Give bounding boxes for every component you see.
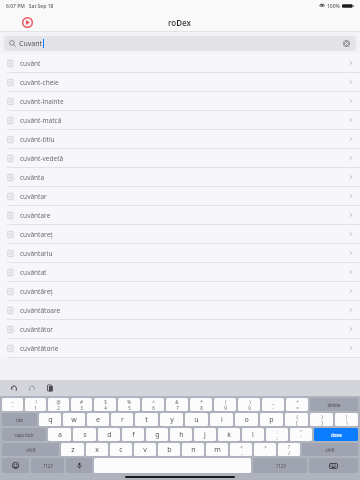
staticText: f <box>132 430 135 440</box>
button[interactable]: cuvântătoare <box>0 301 360 320</box>
button[interactable]: & <box>166 398 188 411</box>
button[interactable]: e <box>87 413 109 426</box>
button[interactable]: .?123 <box>253 458 307 473</box>
button[interactable]: Undo <box>8 382 20 394</box>
button[interactable]: v <box>134 443 156 456</box>
button[interactable]: cuvântariu <box>0 244 360 263</box>
button[interactable]: Cuvant <box>4 36 356 51</box>
button[interactable]: s <box>73 428 96 441</box>
button[interactable]: cuvântăreț <box>0 282 360 301</box>
staticText: o <box>244 415 249 425</box>
button[interactable]: * <box>190 398 212 411</box>
button[interactable]: n <box>182 443 204 456</box>
button[interactable]: shift <box>302 443 358 456</box>
button[interactable]: p <box>260 413 283 426</box>
button[interactable]: cuvânt-vedetă <box>0 149 360 168</box>
staticText: / <box>288 450 290 456</box>
staticText: cuvântareț <box>20 230 53 239</box>
button[interactable]: ~ <box>2 398 23 411</box>
button[interactable]: cuvânt-înainte <box>0 92 360 111</box>
button[interactable]: u <box>185 413 208 426</box>
button[interactable]: cuvânt <box>0 54 360 73</box>
button[interactable]: ( <box>214 398 236 411</box>
button[interactable]: : <box>266 428 288 441</box>
button[interactable]: c <box>110 443 132 456</box>
button[interactable]: Clear text <box>342 39 351 48</box>
button[interactable]: " <box>290 428 312 441</box>
button[interactable]: cuvânt-cheie <box>0 73 360 92</box>
staticText: % <box>127 399 131 405</box>
button[interactable]: @ <box>48 398 69 411</box>
button[interactable]: cuvântătorie <box>0 339 360 358</box>
button[interactable]: { <box>285 413 308 426</box>
button[interactable]: m <box>206 443 228 456</box>
button[interactable]: % <box>118 398 140 411</box>
staticText: m <box>214 445 221 455</box>
button[interactable]: .?123 <box>31 458 64 473</box>
button[interactable]: x <box>86 443 108 456</box>
button[interactable]: Redo <box>26 382 38 394</box>
button[interactable]: done <box>314 428 358 441</box>
staticText: g <box>155 430 160 440</box>
staticText: l <box>252 430 254 440</box>
staticText: k <box>227 430 231 440</box>
staticText: @ <box>56 399 61 405</box>
staticText: w <box>71 415 77 425</box>
staticText: cuvântare <box>20 211 51 220</box>
button[interactable]: b <box>158 443 180 456</box>
button[interactable]: cuvânt-matcă <box>0 111 360 130</box>
button[interactable]: ? <box>278 443 300 456</box>
button[interactable]: # <box>71 398 92 411</box>
button[interactable]: z <box>61 443 84 456</box>
button[interactable]: w <box>63 413 85 426</box>
staticText: cuvântător <box>20 325 54 334</box>
button[interactable]: Menu <box>20 15 34 29</box>
button[interactable]: ) <box>238 398 260 411</box>
button[interactable]: q <box>39 413 61 426</box>
button[interactable]: cuvântar <box>0 187 360 206</box>
button[interactable]: > <box>254 443 276 456</box>
button[interactable]: } <box>310 413 333 426</box>
staticText: cuvântat <box>20 268 47 277</box>
button[interactable]: + <box>286 398 308 411</box>
button[interactable]: l <box>242 428 264 441</box>
button[interactable]: ! <box>25 398 46 411</box>
button[interactable]: t <box>135 413 158 426</box>
staticText: . <box>265 450 267 456</box>
button[interactable]: h <box>170 428 192 441</box>
button[interactable]: f <box>122 428 144 441</box>
button[interactable]: cuvânt-titlu <box>0 130 360 149</box>
button[interactable]: r <box>111 413 133 426</box>
button[interactable]: y <box>160 413 183 426</box>
staticText: $ <box>104 399 107 405</box>
button[interactable]: shift <box>2 443 59 456</box>
button[interactable]: a <box>48 428 71 441</box>
staticText: cuvânt-vedetă <box>20 154 64 163</box>
button[interactable]: caps lock <box>2 428 46 441</box>
button[interactable]: cuvântat <box>0 263 360 282</box>
button[interactable]: delete <box>310 398 358 411</box>
button[interactable]: _ <box>262 398 284 411</box>
button[interactable]: | <box>335 413 358 426</box>
button[interactable]: j <box>194 428 216 441</box>
button[interactable]: k <box>218 428 240 441</box>
button[interactable]: Paste <box>44 382 56 394</box>
button[interactable]: $ <box>94 398 116 411</box>
button[interactable]: Dictate <box>66 458 92 473</box>
button[interactable]: < <box>230 443 252 456</box>
button[interactable]: Hide keyboard <box>309 458 358 473</box>
staticText: = <box>296 405 299 411</box>
button[interactable]: tab <box>2 413 37 426</box>
button[interactable]: cuvântător <box>0 320 360 339</box>
button[interactable]: cuvânta <box>0 168 360 187</box>
button[interactable]: ^ <box>142 398 164 411</box>
button[interactable]: g <box>146 428 168 441</box>
button[interactable]: o <box>235 413 258 426</box>
button[interactable]: cuvântare <box>0 206 360 225</box>
button[interactable]: Emoji <box>2 458 29 473</box>
button[interactable]: d <box>98 428 120 441</box>
button[interactable]: cuvântareț <box>0 225 360 244</box>
button[interactable]: i <box>210 413 233 426</box>
staticText: cuvânt <box>20 59 41 68</box>
